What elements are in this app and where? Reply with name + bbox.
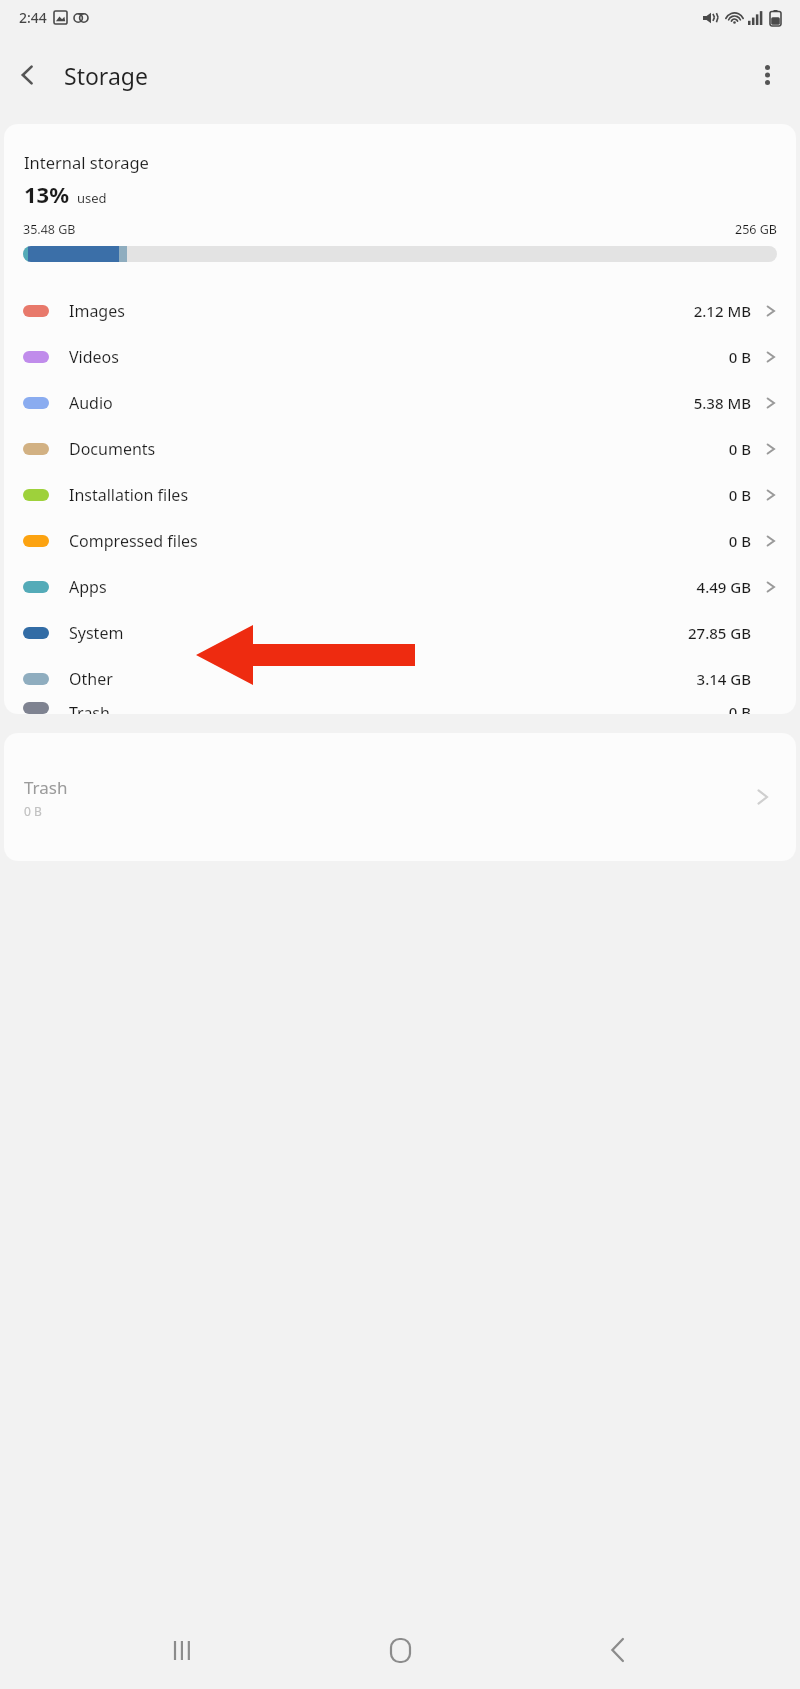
button[interactable]: Audio (4, 380, 796, 426)
staticText: System (69, 622, 124, 644)
staticText: Installation files (69, 484, 189, 506)
staticText: 13% (24, 179, 70, 209)
button[interactable]: More options (742, 50, 792, 100)
staticText: Documents (69, 438, 156, 460)
staticText: 256 GB (735, 221, 777, 238)
staticText: 4.49 GB (696, 577, 751, 597)
staticText: Apps (69, 576, 107, 598)
staticText: Other (69, 668, 113, 690)
button[interactable]: Trash (4, 702, 796, 714)
button[interactable]: Back (583, 1615, 653, 1685)
staticText: used (77, 189, 107, 207)
button[interactable]: Home (365, 1615, 435, 1685)
staticText: Storage (64, 60, 148, 91)
button[interactable]: Apps (4, 564, 796, 610)
staticText: 0 B (24, 803, 42, 819)
button[interactable]: Back (0, 47, 56, 103)
staticText: 3.14 GB (696, 669, 751, 689)
button[interactable]: Videos (4, 334, 796, 380)
button[interactable]: Trash (4, 733, 796, 861)
button[interactable]: Compressed files (4, 518, 796, 564)
staticText: 0 B (728, 439, 751, 459)
button[interactable]: Images (4, 288, 796, 334)
button[interactable]: Installation files (4, 472, 796, 518)
staticText: 5.38 MB (693, 393, 751, 413)
staticText: 0 B (728, 347, 751, 367)
staticText: Trash (24, 776, 68, 799)
staticText: 0 B (728, 485, 751, 505)
button[interactable]: Other (4, 656, 796, 702)
button[interactable]: Recent apps (148, 1615, 218, 1685)
staticText: 35.48 GB (23, 221, 76, 238)
staticText: Videos (69, 346, 119, 368)
staticText: Compressed files (69, 530, 198, 552)
staticText: 0 B (728, 531, 751, 551)
button[interactable]: Documents (4, 426, 796, 472)
staticText: 2:44 (19, 8, 47, 27)
staticText: Images (69, 300, 125, 322)
staticText: 0 B (728, 702, 751, 714)
staticText: 27.85 GB (687, 623, 751, 643)
staticText: Trash (69, 702, 110, 714)
staticText: Internal storage (24, 151, 149, 173)
staticText: Audio (69, 392, 113, 414)
button[interactable]: System (4, 610, 796, 656)
staticText: 2.12 MB (693, 301, 751, 321)
